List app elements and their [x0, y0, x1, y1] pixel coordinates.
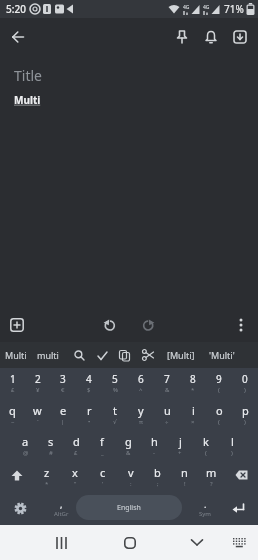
staticText: 4G — [203, 4, 210, 11]
button[interactable]: 3 — [50, 372, 76, 398]
button[interactable]: h — [141, 429, 167, 460]
staticText: English — [117, 503, 141, 513]
button[interactable]: a — [13, 429, 38, 460]
button[interactable]: English — [76, 495, 182, 520]
staticText: ¥ — [36, 386, 40, 394]
staticText: Multi — [5, 349, 27, 361]
button[interactable]: r — [76, 398, 102, 429]
button[interactable]: y — [128, 398, 154, 429]
button[interactable] — [183, 529, 210, 556]
button[interactable]: e — [50, 398, 76, 429]
button[interactable]: t — [102, 398, 128, 429]
button[interactable]: 9 — [206, 372, 232, 398]
staticText: y — [138, 403, 144, 418]
button[interactable] — [0, 308, 34, 342]
button[interactable] — [48, 529, 75, 556]
staticText: . — [204, 498, 207, 510]
staticText: _ — [101, 449, 104, 457]
staticText: ^ — [139, 386, 143, 394]
button[interactable]: j — [167, 429, 193, 460]
button[interactable]: 0 — [232, 372, 258, 398]
staticText: $ — [87, 386, 91, 394]
button[interactable]: s — [38, 429, 63, 460]
button[interactable] — [95, 310, 125, 340]
button[interactable]: , — [46, 494, 76, 522]
button[interactable]: z — [33, 460, 61, 490]
button[interactable]: 6 — [128, 372, 154, 398]
button[interactable]: Multi — [2, 342, 30, 368]
button[interactable]: v — [117, 460, 144, 490]
button[interactable]: 7 — [154, 372, 180, 398]
button[interactable]: g — [115, 429, 141, 460]
button[interactable]: p — [232, 398, 258, 429]
button[interactable] — [197, 23, 225, 51]
staticText: f — [100, 434, 104, 449]
button[interactable]: x — [61, 460, 89, 490]
staticText: Sym — [199, 510, 211, 518]
button[interactable] — [0, 460, 33, 490]
staticText: ` — [37, 418, 39, 426]
button[interactable]: d — [63, 429, 89, 460]
staticText: o — [216, 403, 223, 418]
button[interactable]: . — [188, 494, 222, 522]
button[interactable]: b — [144, 460, 171, 490]
button[interactable]: 2 — [25, 372, 50, 398]
staticText: multi — [37, 349, 59, 361]
staticText: a — [22, 434, 29, 449]
button[interactable]: [Multi] — [164, 342, 198, 368]
staticText: ( — [205, 449, 207, 457]
button[interactable]: l — [219, 429, 245, 460]
staticText: t — [113, 403, 117, 418]
button[interactable]: w — [25, 398, 50, 429]
staticText: & — [126, 449, 131, 457]
staticText: 7 — [164, 372, 170, 386]
staticText: 5 — [112, 372, 118, 386]
button[interactable]: 'Multi' — [206, 342, 238, 368]
staticText: ÷ — [165, 418, 169, 426]
button[interactable]: m — [198, 460, 225, 490]
button[interactable]: 5 — [102, 372, 128, 398]
staticText: 1 — [10, 372, 16, 386]
staticText: 0 — [242, 372, 248, 386]
button[interactable]: o — [206, 398, 232, 429]
button[interactable] — [226, 23, 254, 51]
button[interactable]: f — [89, 429, 115, 460]
staticText: 'Multi' — [209, 349, 235, 361]
button[interactable] — [133, 310, 163, 340]
staticText: z — [44, 465, 50, 480]
staticText: l — [231, 434, 234, 449]
button[interactable]: q — [0, 398, 25, 429]
button[interactable] — [4, 23, 32, 51]
button[interactable] — [222, 494, 254, 522]
staticText: 4 — [86, 372, 92, 386]
staticText: × — [191, 418, 195, 426]
button[interactable]: 8 — [180, 372, 206, 398]
button[interactable] — [68, 344, 90, 366]
staticText: n — [181, 465, 188, 480]
button[interactable] — [168, 23, 196, 51]
button[interactable] — [224, 308, 258, 342]
staticText: * — [45, 480, 49, 488]
staticText: | — [61, 418, 65, 426]
button[interactable]: n — [171, 460, 198, 490]
button[interactable]: c — [89, 460, 117, 490]
button[interactable] — [225, 460, 258, 490]
staticText: € — [61, 386, 65, 394]
button[interactable] — [91, 344, 113, 366]
staticText: AltGr — [54, 510, 69, 518]
button[interactable] — [137, 344, 159, 366]
button[interactable] — [113, 344, 135, 366]
button[interactable] — [226, 529, 253, 556]
staticText: ~ — [11, 418, 15, 426]
button[interactable]: multi — [34, 342, 62, 368]
button[interactable]: k — [193, 429, 219, 460]
staticText: g — [125, 434, 132, 449]
staticText: 71% — [224, 2, 244, 16]
button[interactable]: u — [154, 398, 180, 429]
button[interactable] — [4, 494, 36, 522]
button[interactable]: 4 — [76, 372, 102, 398]
button[interactable] — [116, 529, 143, 556]
button[interactable]: 1 — [0, 372, 25, 398]
staticText: q — [9, 403, 16, 418]
button[interactable]: i — [180, 398, 206, 429]
